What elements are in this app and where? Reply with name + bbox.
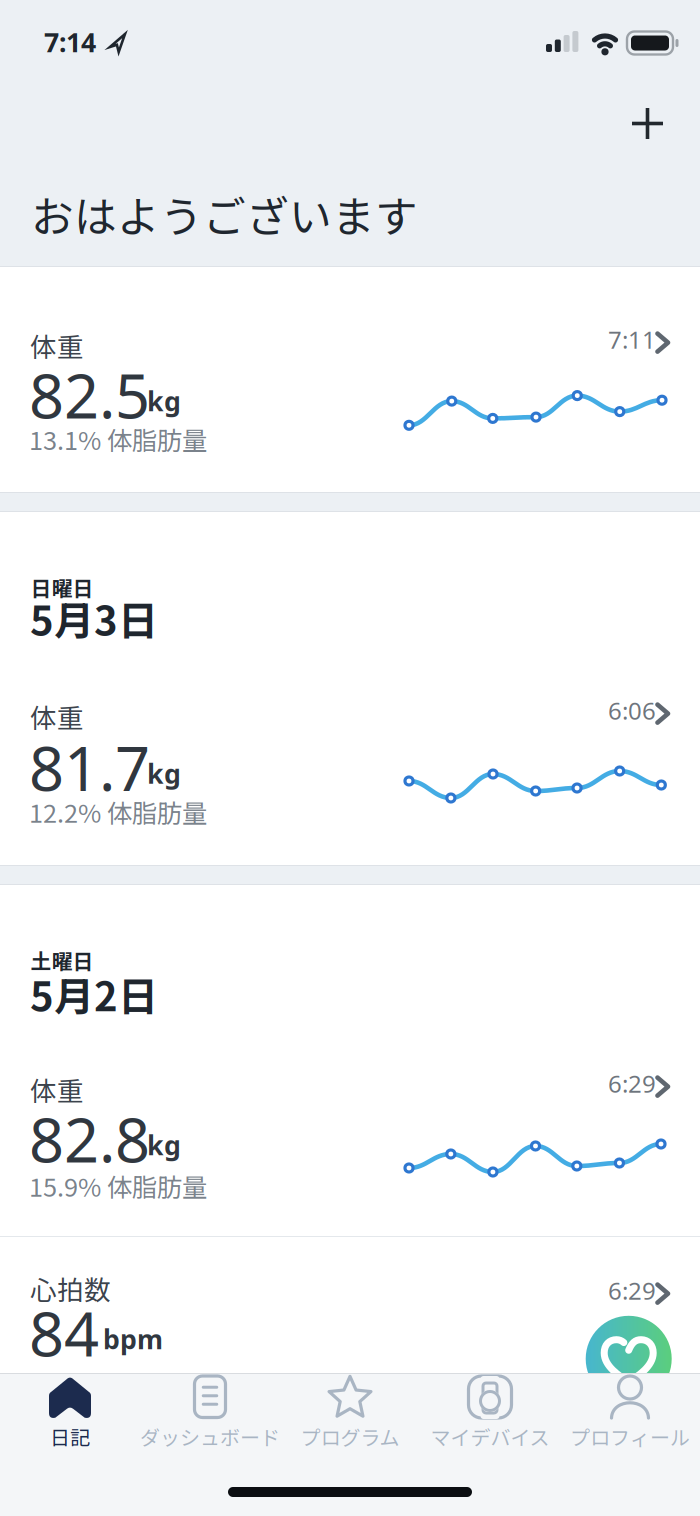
- staticText: kg: [147, 1127, 181, 1162]
- staticText: 7:11: [608, 324, 656, 355]
- button[interactable]: 6:06: [495, 695, 681, 729]
- staticText: 心拍数: [30, 1269, 111, 1308]
- button[interactable]: 体重: [0, 1062, 700, 1222]
- button[interactable]: マイデバイス: [420, 1374, 560, 1474]
- button[interactable]: プロフィール: [560, 1374, 700, 1474]
- staticText: ダッシュボード: [140, 1422, 280, 1451]
- staticText: bpm: [103, 1321, 163, 1356]
- staticText: 6:29: [608, 1275, 656, 1306]
- staticText: マイデバイス: [430, 1422, 549, 1451]
- button[interactable]: 6:29: [495, 1275, 681, 1309]
- staticText: 体重: [30, 326, 84, 365]
- button[interactable]: 6:29: [495, 1068, 681, 1102]
- staticText: 日記: [50, 1422, 90, 1451]
- staticText: 7:14: [44, 24, 96, 60]
- staticText: 体重: [30, 697, 84, 736]
- staticText: 12.2% 体脂肪量: [29, 793, 207, 830]
- staticText: 土曜日: [30, 945, 93, 975]
- button[interactable]: プログラム: [280, 1374, 420, 1474]
- staticText: おはようございます: [31, 183, 418, 245]
- staticText: 84: [29, 1292, 99, 1373]
- button[interactable]: 体重: [0, 689, 700, 849]
- staticText: プログラム: [300, 1422, 399, 1451]
- staticText: kg: [147, 383, 181, 419]
- staticText: プロフィール: [570, 1422, 690, 1451]
- staticText: 5月2日: [30, 965, 158, 1023]
- button[interactable]: 日記: [0, 1374, 140, 1474]
- staticText: kg: [147, 756, 181, 791]
- button[interactable]: 7:11: [495, 324, 681, 358]
- staticText: 82.8: [29, 1098, 150, 1179]
- button[interactable]: 心拍数: [0, 1240, 700, 1376]
- staticText: 81.7: [29, 727, 150, 808]
- staticText: 体重: [30, 1070, 84, 1109]
- staticText: 日曜日: [30, 572, 93, 602]
- staticText: 82.5: [29, 354, 150, 435]
- staticText: 13.1% 体脂肪量: [29, 421, 207, 457]
- button[interactable]: 体重: [0, 318, 700, 478]
- button[interactable]: ダッシュボード: [140, 1374, 280, 1474]
- button[interactable]: Add measurement: [618, 94, 677, 153]
- staticText: 6:29: [608, 1068, 656, 1099]
- staticText: 5月3日: [30, 589, 158, 647]
- staticText: 6:06: [608, 695, 656, 726]
- staticText: 15.9% 体脂肪量: [29, 1167, 207, 1204]
